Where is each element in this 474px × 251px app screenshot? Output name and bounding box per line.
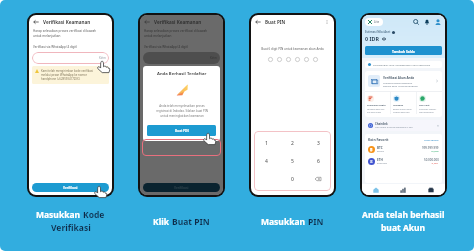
- button[interactable]: 6: [305, 152, 331, 170]
- button[interactable]: Akademi: [391, 92, 416, 117]
- staticText: Tren tinggi di bursa sepanjang 7 hari: [375, 126, 413, 129]
- staticText: Koin Favorit: [368, 137, 389, 142]
- staticText: Ξ: [370, 159, 373, 165]
- staticText: Chainlink: [375, 122, 388, 126]
- staticText: Buat PIN: [175, 129, 189, 133]
- staticText: Akademi: [393, 104, 404, 107]
- button[interactable]: Market: [389, 184, 417, 195]
- staticText: Harap selesaikan proses verifikasi di ba…: [144, 29, 208, 38]
- staticText: buat Akun: [381, 222, 426, 234]
- staticText: Verifikasi: [174, 186, 189, 190]
- button[interactable]: 1: [254, 134, 279, 152]
- button[interactable]: [32, 52, 109, 64]
- button[interactable]: 5: [279, 152, 305, 170]
- staticText: Belajar kripto untuk trading lebih baik: [393, 108, 412, 114]
- button[interactable]: 3: [305, 134, 331, 152]
- button[interactable]: More options: [324, 19, 330, 25]
- staticText: Estimasi Nilai Aset: [365, 30, 391, 34]
- button[interactable]: 4: [254, 152, 279, 170]
- button[interactable]: [143, 52, 220, 64]
- staticText: Buat 6 digit PIN untuk keamanan akun And…: [251, 47, 334, 51]
- button[interactable]: 0: [279, 170, 305, 188]
- button[interactable]: Notifications: [423, 18, 431, 26]
- staticText: Verifikasi Akun Anda: [383, 76, 415, 80]
- staticText: Bitcoin: [377, 150, 385, 153]
- button[interactable]: Back: [144, 19, 150, 25]
- staticText: Ethereum: [377, 162, 388, 165]
- button[interactable]: Live Chat: [417, 92, 442, 117]
- staticText: -0,28%: [431, 162, 439, 165]
- staticText: 0 IDR: [365, 35, 380, 42]
- staticText: Tersedia lebih dari 200 koin kripto: [367, 108, 385, 114]
- button[interactable]: Profile: [434, 18, 442, 26]
- staticText: Kode: [83, 209, 105, 221]
- staticText: Verifikasi via WhatsApp (4 digit): [33, 45, 78, 49]
- staticText: Kami telah mengirimkan kode verifikasi m…: [41, 69, 93, 81]
- staticText: 3: [317, 140, 320, 147]
- button[interactable]: Back: [33, 19, 39, 25]
- staticText: Perlindungan Akun: mengaktifkan 2 fitur …: [373, 63, 431, 66]
- staticText: Verifikasi: [51, 222, 91, 234]
- staticText: Masukkan: [261, 216, 308, 228]
- staticText: Buat PIN: [265, 19, 286, 25]
- staticText: 5: [291, 158, 294, 165]
- button[interactable]: Wallet: [417, 184, 445, 195]
- staticText: 0: [291, 176, 294, 183]
- staticText: 50.000.000: [424, 158, 439, 162]
- staticText: Live Chat: [419, 104, 430, 107]
- button[interactable]: Back: [255, 19, 261, 25]
- staticText: 2: [291, 140, 294, 147]
- staticText: Kirim: [210, 56, 217, 60]
- staticText: Transaksi dapat dilakukan setelah akun A…: [383, 81, 418, 87]
- button[interactable]: Transaksi Kripto: [365, 92, 390, 117]
- button[interactable]: Verifikasi Akun Anda: [365, 71, 442, 91]
- staticText: Lite: [374, 20, 380, 24]
- staticText: Verifikasi via WhatsApp (4 digit): [144, 45, 189, 49]
- staticText: 1: [265, 140, 268, 147]
- staticText: 999.999.999: [422, 146, 439, 150]
- button[interactable]: ₿: [368, 146, 439, 153]
- button[interactable]: Verifikasi: [32, 183, 109, 192]
- button[interactable]: Chainlink: [368, 122, 439, 129]
- button[interactable]: Verifikasi: [143, 183, 220, 192]
- staticText: PIN: [308, 216, 324, 228]
- staticText: Verifikasi Keamanan: [43, 19, 91, 25]
- staticText: Klik: [153, 216, 172, 228]
- staticText: Tambah Saldo: [392, 49, 415, 53]
- staticText: +0,02%: [431, 150, 439, 153]
- staticText: Transaksi Kripto: [367, 104, 386, 107]
- staticText: Verifikasi: [63, 186, 78, 190]
- button[interactable]: Search: [412, 18, 420, 26]
- staticText: 6: [317, 158, 320, 165]
- button[interactable]: Tambah Saldo: [365, 46, 442, 55]
- staticText: ×: [437, 124, 439, 128]
- staticText: Masukkan: [36, 209, 83, 221]
- button[interactable]: Lite: [368, 20, 380, 24]
- staticText: ETH: [377, 158, 383, 162]
- staticText: Buat PIN: [172, 216, 210, 228]
- button[interactable]: Buat PIN: [147, 125, 216, 136]
- button[interactable]: Lihat Semua: [424, 138, 439, 141]
- staticText: Lihat Semua: [424, 138, 439, 141]
- staticText: Anda telah berhasil: [362, 209, 445, 221]
- button[interactable]: Ξ: [368, 158, 439, 165]
- staticText: Anda Berhasil Terdaftar: [157, 71, 207, 77]
- staticText: Anda telah menyelesaikan proses registra…: [156, 104, 208, 117]
- button[interactable]: Home: [362, 184, 389, 195]
- staticText: Harap selesaikan proses verifikasi di ba…: [33, 29, 97, 38]
- button[interactable]: [305, 170, 331, 188]
- staticText: BTC: [377, 146, 383, 150]
- staticText: ₿: [370, 147, 373, 153]
- staticText: Kirim: [99, 56, 106, 60]
- button[interactable]: 2: [279, 134, 305, 152]
- staticText: Verifikasi Keamanan: [154, 19, 202, 25]
- staticText: Customer support siap membantu: [419, 108, 437, 114]
- staticText: 4: [265, 158, 268, 165]
- button[interactable]: Perlindungan Akun: mengaktifkan 2 fitur …: [368, 63, 439, 66]
